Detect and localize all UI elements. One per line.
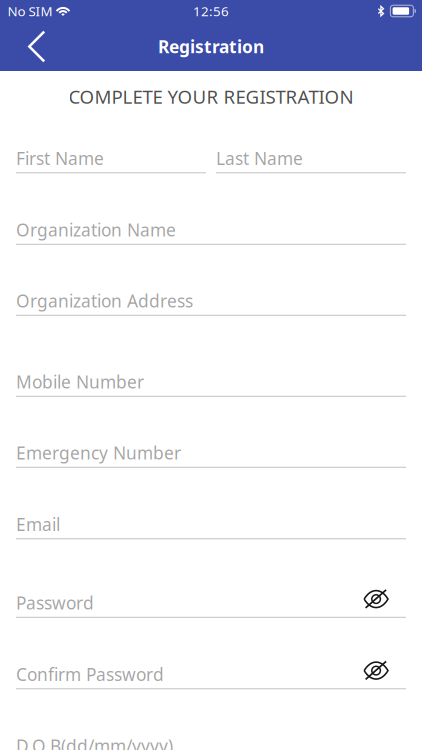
staticText: D.O.B(dd/mm/yyyy) [16, 734, 173, 750]
button[interactable]: Back [0, 22, 61, 71]
staticText: Password [16, 591, 94, 614]
staticText: Organization Name [16, 218, 176, 241]
staticText: Email [16, 513, 60, 536]
staticText: Confirm Password [16, 663, 164, 686]
staticText: Registration [158, 35, 264, 58]
staticText: First Name [16, 147, 104, 170]
staticText: Last Name [216, 147, 303, 170]
staticText: 12:56 [193, 2, 229, 20]
staticText: COMPLETE YOUR REGISTRATION [68, 84, 353, 109]
staticText: Emergency Number [16, 441, 181, 464]
button[interactable]: Show Password [363, 589, 406, 616]
staticText: Organization Address [16, 289, 193, 312]
staticText: No SIM [7, 2, 52, 20]
button[interactable]: Show Confirm Password [363, 661, 406, 688]
staticText: Mobile Number [16, 370, 144, 393]
